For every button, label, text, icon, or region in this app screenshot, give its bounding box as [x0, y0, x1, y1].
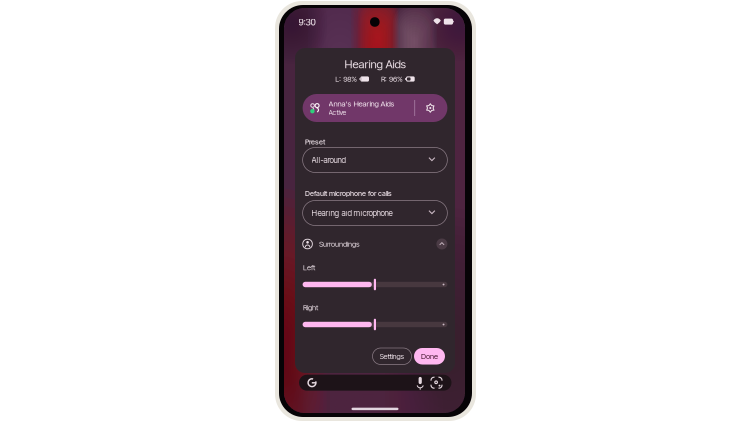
staticText: 9:30	[298, 17, 315, 28]
staticText: Surroundings	[319, 239, 360, 248]
staticText: Done	[421, 352, 438, 361]
button[interactable]: All-around	[303, 147, 447, 172]
staticText: L: 98%	[335, 74, 357, 83]
staticText: Hearing Aids	[344, 57, 405, 71]
staticText: All-around	[312, 155, 346, 165]
button[interactable]: Anna's Hearing Aids	[303, 94, 447, 122]
button[interactable]: Settings	[372, 348, 411, 364]
staticText: Active	[329, 108, 347, 117]
button[interactable]: Hearing aid microphone	[303, 200, 447, 225]
staticText: Anna's Hearing Aids	[329, 99, 395, 108]
staticText: Right	[303, 303, 318, 312]
staticText: Settings	[379, 352, 404, 361]
staticText: Preset	[305, 137, 325, 146]
staticText: R: 96%	[381, 74, 403, 83]
button[interactable]	[303, 318, 447, 331]
button[interactable]	[299, 375, 451, 391]
staticText: Left	[303, 263, 315, 272]
staticText: Hearing aid microphone	[312, 208, 393, 218]
staticText: Default microphone for calls	[305, 189, 392, 198]
button[interactable]: Done	[414, 348, 445, 364]
button[interactable]: Surroundings	[303, 237, 447, 250]
button[interactable]	[303, 278, 447, 291]
